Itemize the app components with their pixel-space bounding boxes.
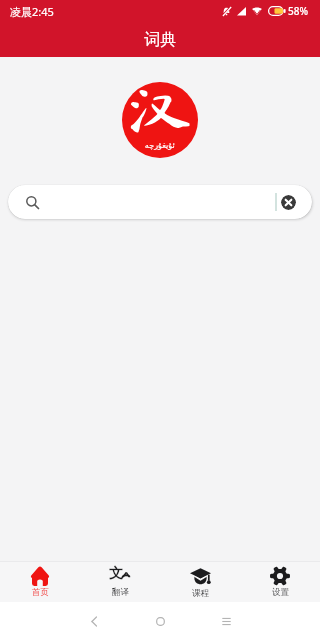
- staticText: 文: [109, 565, 123, 583]
- button[interactable]: Back: [81, 608, 107, 634]
- button[interactable]: Clear: [281, 195, 296, 210]
- staticText: 翻译: [112, 587, 129, 598]
- staticText: 首页: [32, 587, 49, 598]
- staticText: 设置: [272, 587, 289, 598]
- button[interactable]: 设置: [240, 562, 320, 602]
- staticText: 凌晨2:45: [10, 4, 54, 19]
- staticText: ئۇيغۇرچە: [145, 141, 175, 150]
- button[interactable]: 课程: [160, 562, 240, 602]
- staticText: 课程: [192, 588, 209, 599]
- button[interactable]: 文: [80, 562, 160, 602]
- button[interactable]: Home: [147, 608, 173, 634]
- staticText: 词典: [144, 30, 176, 50]
- button[interactable]: Recents: [213, 608, 239, 634]
- button[interactable]: Clear: [8, 185, 312, 219]
- staticText: 58%: [288, 4, 308, 18]
- button[interactable]: 首页: [0, 562, 80, 602]
